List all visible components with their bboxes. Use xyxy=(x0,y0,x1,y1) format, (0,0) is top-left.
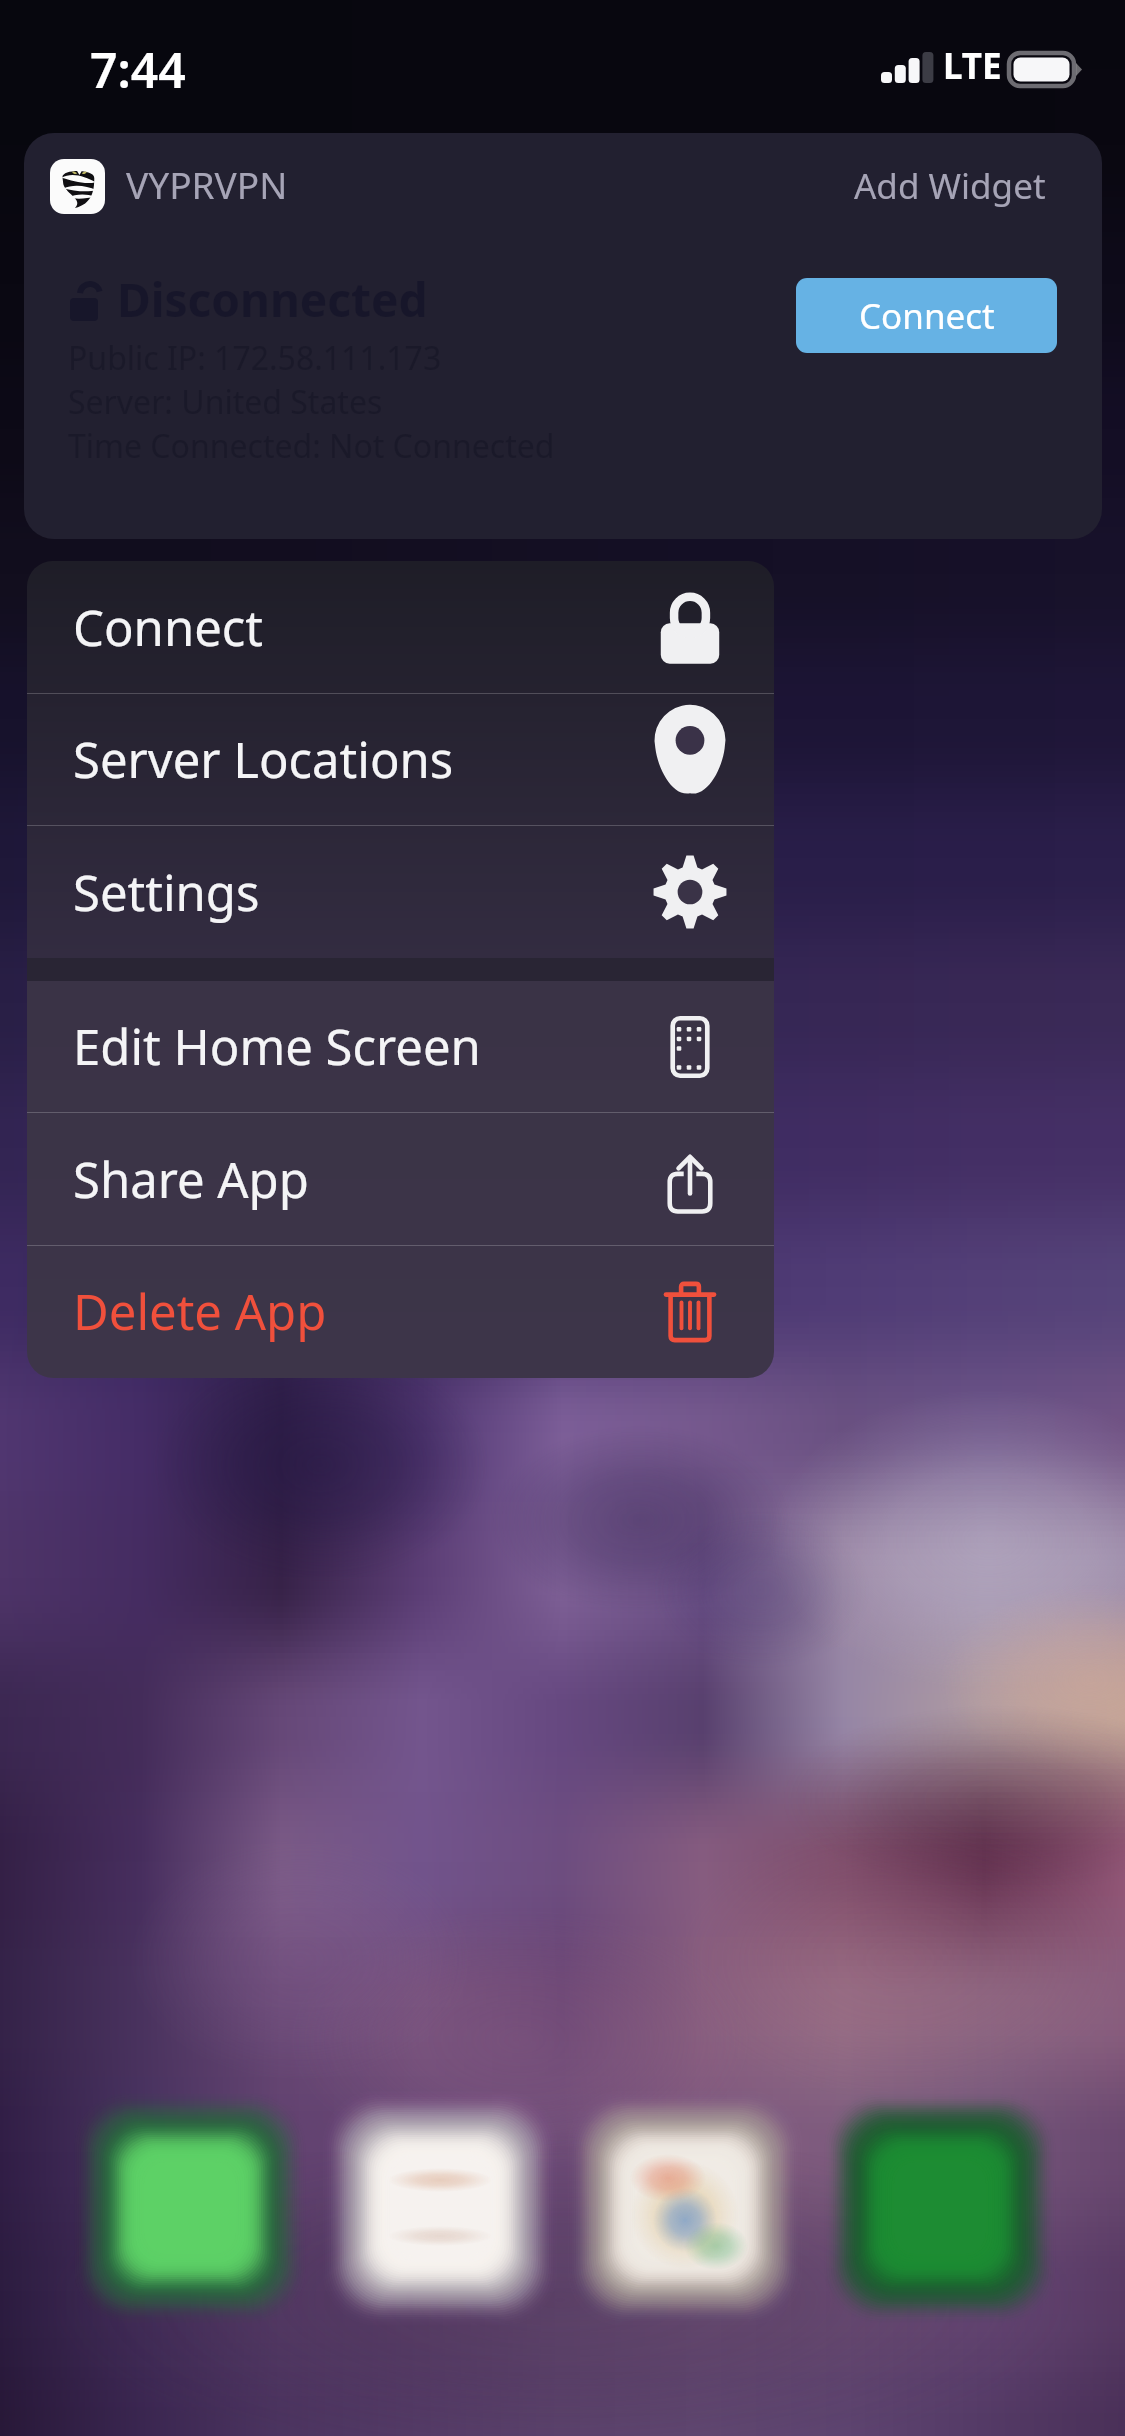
button[interactable]: Delete App xyxy=(27,1246,774,1377)
staticText: 7:44 xyxy=(90,37,186,102)
button[interactable]: Add Widget xyxy=(854,162,1046,210)
button[interactable]: Connect xyxy=(27,561,774,693)
staticText: Connect xyxy=(859,292,995,340)
button[interactable]: Server Locations xyxy=(27,694,774,825)
button[interactable]: Settings xyxy=(27,826,774,958)
staticText: Edit Home Screen xyxy=(73,1013,481,1080)
staticText: Server Locations xyxy=(73,726,454,793)
staticText: Share App xyxy=(73,1146,309,1213)
button[interactable]: Connect xyxy=(796,278,1057,353)
staticText: Settings xyxy=(73,859,260,926)
staticText: VYPRVPN xyxy=(126,159,288,209)
staticText: LTE xyxy=(943,42,1002,90)
staticText: Add Widget xyxy=(854,162,1046,210)
button[interactable]: Edit Home Screen xyxy=(27,981,774,1112)
staticText: Connect xyxy=(73,594,264,661)
button[interactable]: VyprVPN app icon xyxy=(50,159,105,214)
button[interactable]: Share App xyxy=(27,1113,774,1245)
staticText: Disconnected xyxy=(117,268,428,331)
staticText: Delete App xyxy=(73,1278,327,1345)
